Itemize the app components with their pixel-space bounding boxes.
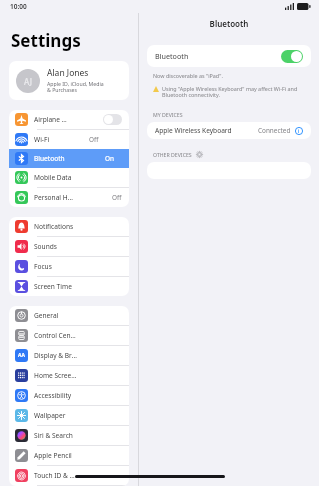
staticText: Bluetooth [155, 51, 189, 61]
staticText: Siri & Search [34, 431, 73, 440]
staticText: i [298, 128, 300, 135]
button[interactable]: Apple Wireless Keyboard [147, 122, 311, 139]
button[interactable]: Screen Time [9, 277, 129, 296]
staticText: Mobile Data [34, 173, 72, 182]
staticText: Connected [258, 126, 291, 135]
staticText: General [34, 311, 59, 320]
button[interactable]: General [9, 306, 129, 325]
staticText: Airplane Mode [34, 115, 68, 124]
staticText: Wallpaper [34, 411, 66, 420]
staticText: AJ [24, 76, 32, 87]
staticText: Focus [34, 262, 52, 271]
staticText: Off [89, 135, 99, 144]
button[interactable]: Wi-Fi [9, 130, 129, 149]
staticText: Control Centre [34, 331, 78, 340]
button[interactable]: Bluetooth [147, 45, 311, 67]
button[interactable]: Apple Pencil [9, 446, 129, 465]
button[interactable]: Control Centre [9, 326, 129, 345]
button[interactable]: Home Screen & Multitas… [9, 366, 129, 385]
staticText: Using "Apple Wireless Keyboard" may affe… [162, 85, 309, 99]
staticText: Apple Wireless Keyboard [155, 126, 232, 135]
staticText: Alan Jones [47, 67, 89, 79]
button[interactable]: Wallpaper [9, 406, 129, 425]
button[interactable]: AA [9, 346, 129, 365]
staticText: Notifications [34, 222, 74, 231]
staticText: Wi-Fi [34, 135, 50, 144]
button[interactable]: Focus [9, 257, 129, 276]
other: Bluetooth on [281, 50, 303, 63]
button[interactable]: Mobile Data [9, 168, 129, 187]
staticText: Personal Hotspot [34, 193, 73, 202]
staticText: Apple ID, iCloud, Media & Purchases [47, 80, 104, 94]
staticText: On [105, 154, 114, 163]
button[interactable]: Siri & Search [9, 426, 129, 445]
staticText: Home Screen & Multitas… [34, 371, 78, 380]
button[interactable]: Personal Hotspot [9, 188, 129, 207]
staticText: Bluetooth [139, 18, 319, 29]
button[interactable]: Sounds [9, 237, 129, 256]
staticText: AA [18, 352, 25, 359]
staticText: Sounds [34, 242, 57, 251]
staticText: Now discoverable as "iPad". [153, 72, 223, 79]
staticText: Settings [11, 29, 81, 52]
button[interactable]: Notifications [9, 217, 129, 236]
button[interactable]: AJ [9, 61, 129, 100]
staticText: Display & Brightness [34, 351, 78, 360]
button[interactable]: Touch ID & Passcode [9, 466, 129, 485]
staticText: Apple Pencil [34, 451, 72, 460]
button[interactable]: Airplane Mode toggle [103, 114, 122, 125]
staticText: Off [112, 193, 122, 202]
button[interactable]: More info [295, 127, 303, 135]
staticText: Screen Time [34, 282, 72, 291]
staticText: OTHER DEVICES [153, 151, 192, 158]
staticText: 10:00 [10, 2, 27, 11]
button[interactable]: Bluetooth [9, 149, 129, 168]
staticText: Bluetooth [34, 154, 65, 163]
staticText: Accessibility [34, 391, 72, 400]
staticText: Touch ID & Passcode [34, 471, 78, 480]
button[interactable]: Accessibility [9, 386, 129, 405]
button[interactable]: Airplane Mode [9, 110, 129, 129]
staticText: MY DEVICES [153, 111, 183, 118]
